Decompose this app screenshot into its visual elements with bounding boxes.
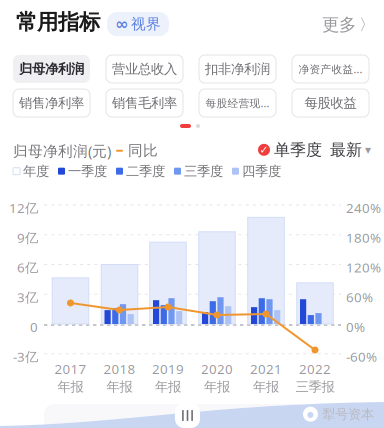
staticText: 年报 xyxy=(204,379,230,395)
staticText: ▾ xyxy=(365,143,371,157)
staticText: 年报 xyxy=(155,379,181,395)
staticText: 180% xyxy=(346,229,381,246)
staticText: 9亿 xyxy=(17,229,38,246)
button[interactable]: ✓ xyxy=(258,140,322,160)
staticText: ∞ xyxy=(115,15,128,33)
staticText: 年度 xyxy=(23,163,49,179)
staticText: 〉 xyxy=(359,15,375,34)
button[interactable]: 最新 xyxy=(330,140,371,160)
button[interactable]: ∞ xyxy=(107,12,169,36)
staticText: 2020 xyxy=(201,360,233,378)
button[interactable]: 每股经营现... xyxy=(199,89,276,117)
staticText: 四季度 xyxy=(242,163,281,179)
staticText: 年报 xyxy=(106,379,132,395)
staticText: 犁号资本 xyxy=(322,406,374,422)
staticText: 归母净利润 xyxy=(19,61,84,77)
button[interactable]: 净资产收益... xyxy=(292,55,369,83)
staticText: 每股经营现... xyxy=(205,96,269,110)
staticText: 年报 xyxy=(253,379,279,395)
button[interactable]: 扣非净利润 xyxy=(199,55,276,83)
button[interactable]: 销售净利率 xyxy=(13,89,90,117)
staticText: 单季度 xyxy=(274,140,322,160)
staticText: 一季度 xyxy=(68,163,107,179)
staticText: 视界 xyxy=(131,15,161,33)
staticText: 销售净利率 xyxy=(19,95,84,111)
button[interactable]: 归母净利润 xyxy=(13,55,90,83)
staticText: 净资产收益... xyxy=(298,62,362,76)
staticText: 二季度 xyxy=(126,163,165,179)
staticText: ✓ xyxy=(259,144,268,156)
staticText: 240% xyxy=(346,199,381,217)
button[interactable]: Chart settings xyxy=(175,403,200,428)
staticText: 120% xyxy=(346,258,381,276)
staticText: 同比 xyxy=(128,142,158,160)
staticText: 2018 xyxy=(103,360,135,378)
staticText: 销售毛利率 xyxy=(112,95,177,111)
staticText: 2021 xyxy=(250,360,282,378)
staticText: 2017 xyxy=(54,360,86,378)
staticText: -3亿 xyxy=(13,348,38,365)
button[interactable]: 营业总收入 xyxy=(106,55,183,83)
staticText: 归母净利润(元) xyxy=(13,141,111,160)
button[interactable]: 销售毛利率 xyxy=(106,89,183,117)
staticText: 三季报 xyxy=(295,379,334,395)
staticText: 2019 xyxy=(152,360,184,378)
button[interactable]: 每股收益 xyxy=(292,89,369,117)
staticText: 12亿 xyxy=(9,199,38,217)
staticText: 0% xyxy=(346,318,365,336)
staticText: 营业总收入 xyxy=(112,61,177,77)
staticText: 更多 xyxy=(322,14,356,35)
staticText: 扣非净利润 xyxy=(205,61,270,77)
button[interactable]: 更多 xyxy=(322,14,375,35)
staticText: 三季度 xyxy=(184,163,223,179)
staticText: 最新 xyxy=(330,140,362,160)
staticText: 6亿 xyxy=(17,258,38,276)
staticText: -60% xyxy=(346,348,377,365)
staticText: 常用指标 xyxy=(16,9,100,35)
staticText: 2022 xyxy=(299,360,331,378)
staticText: 3亿 xyxy=(17,288,38,306)
staticText: 每股收益 xyxy=(304,95,356,111)
staticText: ● xyxy=(307,410,314,419)
staticText: 0 xyxy=(30,318,38,336)
staticText: 60% xyxy=(346,288,373,306)
staticText: 年报 xyxy=(57,379,83,395)
